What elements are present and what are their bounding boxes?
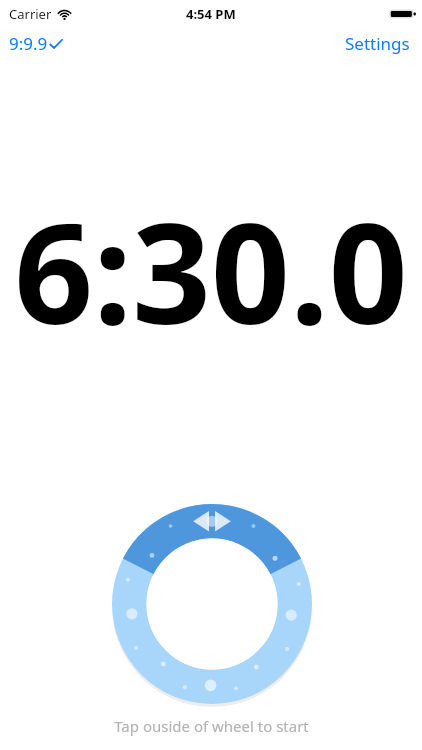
staticText: Settings — [345, 32, 410, 55]
staticText: 4:54 PM — [186, 5, 236, 23]
staticText: 6:30.0 — [14, 176, 408, 364]
staticText: 9:9.9 — [9, 32, 48, 55]
staticText: Tap ouside of wheel to start — [114, 716, 309, 736]
button[interactable]: 9:9.9 — [0, 29, 71, 58]
button[interactable]: Adjust timer wheel — [112, 504, 312, 704]
staticText: Carrier — [9, 5, 52, 23]
button[interactable]: Settings — [333, 29, 422, 58]
